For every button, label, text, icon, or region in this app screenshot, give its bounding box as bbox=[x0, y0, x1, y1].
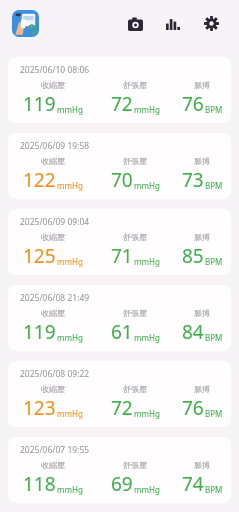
staticText: 76 bbox=[182, 91, 204, 117]
staticText: 71 bbox=[111, 243, 133, 269]
staticText: 舒張壓 bbox=[123, 80, 147, 90]
staticText: 76 bbox=[182, 395, 204, 421]
staticText: 70 bbox=[111, 167, 133, 193]
staticText: BPM bbox=[205, 180, 223, 191]
staticText: mmHg bbox=[57, 484, 83, 495]
staticText: BPM bbox=[205, 408, 223, 419]
staticText: 122 bbox=[23, 167, 56, 193]
staticText: BPM bbox=[205, 104, 223, 115]
button[interactable]: Settings bbox=[195, 7, 227, 39]
button[interactable]: App icon bbox=[12, 10, 39, 37]
staticText: mmHg bbox=[57, 180, 83, 191]
staticText: 72 bbox=[111, 91, 133, 117]
staticText: 舒張壓 bbox=[123, 460, 147, 470]
staticText: 舒張壓 bbox=[123, 232, 147, 242]
staticText: 119 bbox=[23, 91, 56, 117]
staticText: BPM bbox=[205, 484, 223, 495]
staticText: mmHg bbox=[57, 332, 83, 343]
staticText: 舒張壓 bbox=[123, 308, 147, 318]
staticText: 脈搏 bbox=[194, 156, 210, 166]
button[interactable]: Camera bbox=[119, 7, 151, 39]
staticText: 舒張壓 bbox=[123, 384, 147, 394]
staticText: mmHg bbox=[57, 256, 83, 267]
staticText: mmHg bbox=[134, 408, 160, 419]
staticText: 2025/06/07 19:55 bbox=[20, 444, 90, 456]
staticText: 61 bbox=[111, 319, 133, 345]
staticText: mmHg bbox=[134, 332, 160, 343]
staticText: 收縮壓 bbox=[41, 232, 65, 242]
staticText: 收縮壓 bbox=[41, 384, 65, 394]
staticText: mmHg bbox=[134, 180, 160, 191]
staticText: 73 bbox=[182, 167, 204, 193]
staticText: 72 bbox=[111, 395, 133, 421]
staticText: 脈搏 bbox=[194, 308, 210, 318]
staticText: mmHg bbox=[134, 256, 160, 267]
staticText: 2025/06/09 09:04 bbox=[20, 216, 90, 228]
staticText: 119 bbox=[23, 319, 56, 345]
staticText: 收縮壓 bbox=[41, 460, 65, 470]
staticText: 脈搏 bbox=[194, 80, 210, 90]
staticText: mmHg bbox=[57, 104, 83, 115]
staticText: 2025/06/09 19:58 bbox=[20, 140, 90, 152]
staticText: 123 bbox=[23, 395, 56, 421]
staticText: 2025/06/08 21:49 bbox=[20, 292, 90, 304]
staticText: 收縮壓 bbox=[41, 156, 65, 166]
staticText: 收縮壓 bbox=[41, 308, 65, 318]
button[interactable]: 2025/06/08 09:22 bbox=[8, 361, 231, 427]
staticText: 脈搏 bbox=[194, 460, 210, 470]
staticText: mmHg bbox=[134, 484, 160, 495]
staticText: 74 bbox=[182, 471, 204, 497]
staticText: 125 bbox=[23, 243, 56, 269]
staticText: 收縮壓 bbox=[41, 80, 65, 90]
staticText: BPM bbox=[205, 256, 223, 267]
staticText: mmHg bbox=[134, 104, 160, 115]
staticText: 2025/06/08 09:22 bbox=[20, 368, 90, 380]
button[interactable]: 2025/06/07 19:55 bbox=[8, 437, 231, 503]
staticText: 2025/06/10 08:06 bbox=[20, 64, 90, 76]
staticText: 脈搏 bbox=[194, 232, 210, 242]
staticText: 84 bbox=[182, 319, 204, 345]
staticText: 舒張壓 bbox=[123, 156, 147, 166]
staticText: mmHg bbox=[57, 408, 83, 419]
button[interactable]: 2025/06/08 21:49 bbox=[8, 285, 231, 351]
staticText: 69 bbox=[111, 471, 133, 497]
button[interactable]: 2025/06/10 08:06 bbox=[8, 57, 231, 123]
button[interactable]: 2025/06/09 09:04 bbox=[8, 209, 231, 275]
button[interactable]: 2025/06/09 19:58 bbox=[8, 133, 231, 199]
staticText: 脈搏 bbox=[194, 384, 210, 394]
staticText: 85 bbox=[182, 243, 204, 269]
staticText: BPM bbox=[205, 332, 223, 343]
staticText: 118 bbox=[23, 471, 56, 497]
button[interactable]: Statistics bbox=[157, 7, 189, 39]
